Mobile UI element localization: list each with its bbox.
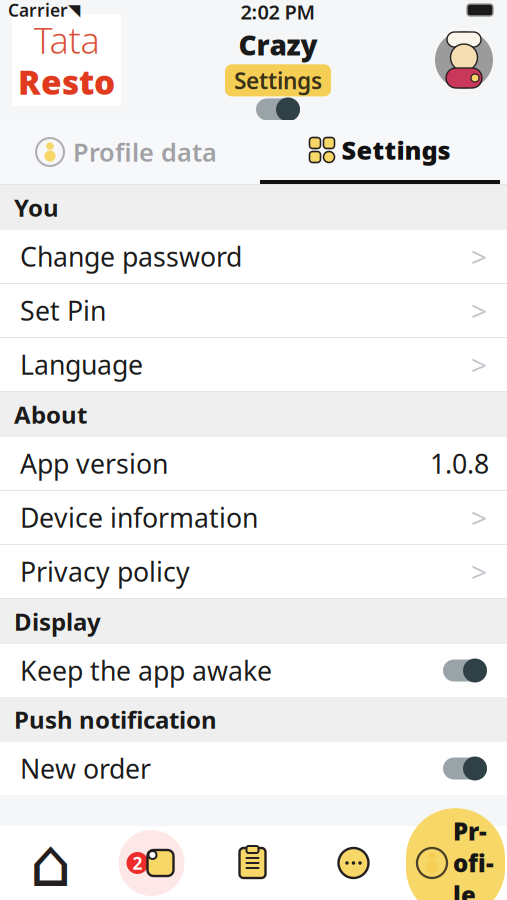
staticText: Push notification: [14, 704, 217, 735]
staticText: Profile data: [73, 135, 217, 169]
staticText: Set Pin: [20, 293, 106, 328]
button[interactable]: Messages: [303, 826, 404, 900]
button[interactable]: Home: [0, 826, 101, 900]
staticText: Profile: [453, 815, 494, 900]
button[interactable]: Change password: [0, 230, 507, 284]
staticText: App version: [20, 446, 168, 481]
staticText: >: [471, 499, 487, 536]
staticText: Settings: [341, 133, 450, 167]
button[interactable]: Profile: [404, 826, 507, 900]
button[interactable]: New order: [0, 742, 507, 795]
staticText: ◥: [68, 1, 80, 19]
staticText: You: [14, 192, 59, 223]
staticText: 2:02 PM: [240, 0, 315, 25]
button[interactable]: Settings: [253, 120, 507, 184]
staticText: Settings: [234, 65, 322, 95]
button[interactable]: Profile data: [0, 120, 253, 184]
staticText: >: [471, 553, 487, 590]
staticText: Privacy policy: [20, 554, 190, 589]
button[interactable]: Set Pin: [0, 284, 507, 338]
staticText: Change password: [20, 239, 242, 274]
staticText: Crazy: [238, 26, 317, 63]
staticText: >: [471, 346, 487, 383]
staticText: Resto: [18, 60, 115, 104]
button[interactable]: Account: [435, 31, 493, 89]
button[interactable]: Privacy policy: [0, 545, 507, 599]
staticText: Carrier: [8, 0, 68, 21]
staticText: >: [471, 292, 487, 329]
staticText: Keep the app awake: [20, 653, 272, 688]
staticText: New order: [20, 751, 151, 786]
button[interactable]: Keep the app awake: [0, 644, 507, 697]
staticText: Device information: [20, 500, 258, 535]
staticText: Display: [14, 606, 101, 637]
staticText: Language: [20, 347, 143, 382]
staticText: Tata: [33, 16, 99, 64]
staticText: 1.0.8: [430, 446, 489, 481]
button[interactable]: Language: [0, 338, 507, 392]
staticText: 2: [132, 851, 142, 874]
button[interactable]: Orders: [202, 826, 303, 900]
button[interactable]: Device information: [0, 491, 507, 545]
staticText: >: [471, 238, 487, 275]
staticText: About: [14, 399, 87, 430]
staticText: ⌂: [29, 825, 71, 900]
button[interactable]: Offers, 2 new: [101, 826, 202, 900]
